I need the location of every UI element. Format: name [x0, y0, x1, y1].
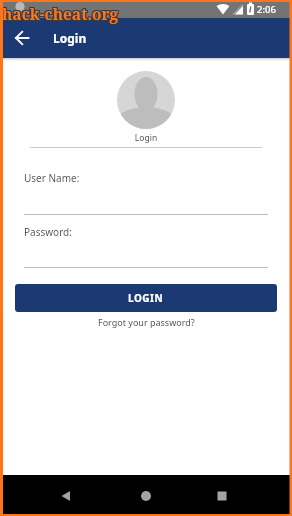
button[interactable] [46, 477, 86, 514]
staticText: hack-cheat.org [1, 3, 118, 24]
staticText: User Name: [24, 171, 80, 185]
button[interactable] [202, 477, 242, 514]
staticText: hack-cheat.org [3, 2, 120, 23]
staticText: 2:06 [257, 3, 276, 16]
button[interactable] [126, 477, 166, 514]
staticText: hack-cheat.org [1, 2, 118, 23]
staticText: LOGIN [128, 291, 164, 305]
staticText: hack-cheat.org [1, 4, 118, 25]
staticText: Password: [24, 225, 72, 239]
staticText: Login [0, 132, 292, 144]
staticText: hack-cheat.org [2, 3, 119, 24]
button[interactable]: LOGIN [15, 284, 277, 312]
staticText: hack-cheat.org [3, 4, 120, 25]
staticText: Login [53, 30, 87, 46]
button[interactable]: Forgot your password? [0, 316, 292, 328]
staticText: hack-cheat.org [3, 3, 120, 24]
button[interactable] [6, 23, 38, 53]
staticText: hack-cheat.org [2, 4, 119, 25]
staticText: hack-cheat.org [2, 2, 119, 23]
staticText: Forgot your password? [98, 316, 195, 328]
